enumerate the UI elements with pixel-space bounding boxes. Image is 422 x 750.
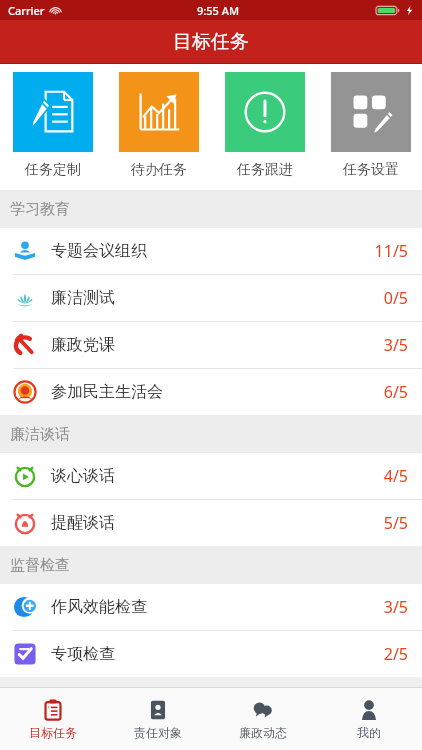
button[interactable]: 廉政动态 <box>210 688 316 750</box>
staticText: 目标任务 <box>29 725 77 740</box>
staticText: 责任对象 <box>134 725 182 740</box>
button[interactable]: 参加民主生活会 <box>0 369 422 415</box>
button[interactable]: 任务跟进 <box>225 72 305 179</box>
staticText: 2/5 <box>383 643 408 665</box>
button[interactable]: 我的 <box>316 688 422 750</box>
staticText: 学习教育 <box>10 200 70 219</box>
button[interactable]: 目标任务 <box>0 688 105 750</box>
button[interactable]: 专题会议组织 <box>0 228 422 275</box>
button[interactable]: 任务设置 <box>331 72 411 179</box>
staticText: 目标任务 <box>173 30 249 54</box>
staticText: 廉洁测试 <box>51 288 115 308</box>
staticText: 0/5 <box>383 287 408 309</box>
staticText: 任务定制 <box>25 161 81 179</box>
button[interactable]: 廉政党课 <box>0 322 422 369</box>
button[interactable]: 任务定制 <box>13 72 93 179</box>
staticText: 3/5 <box>383 334 408 356</box>
staticText: 我的 <box>357 725 381 740</box>
button[interactable]: 作风效能检查 <box>0 584 422 631</box>
staticText: 6/5 <box>383 381 408 403</box>
staticText: 专题会议组织 <box>51 241 147 261</box>
staticText: 5/5 <box>383 512 408 534</box>
staticText: 廉政党课 <box>51 335 115 355</box>
staticText: 任务跟进 <box>237 161 293 179</box>
staticText: 廉政动态 <box>239 725 287 740</box>
staticText: 9:55 AM <box>197 3 240 18</box>
staticText: 监督检查 <box>10 556 70 575</box>
button[interactable]: 廉洁测试 <box>0 275 422 322</box>
staticText: 3/5 <box>383 596 408 618</box>
button[interactable]: 谈心谈话 <box>0 453 422 500</box>
staticText: 参加民主生活会 <box>51 382 163 402</box>
staticText: 11/5 <box>374 240 408 262</box>
staticText: 待办任务 <box>131 161 187 179</box>
staticText: Carrier <box>8 3 45 18</box>
button[interactable]: 专项检查 <box>0 631 422 677</box>
staticText: 任务设置 <box>343 161 399 179</box>
button[interactable]: 待办任务 <box>119 72 199 179</box>
staticText: 4/5 <box>383 465 408 487</box>
staticText: 提醒谈话 <box>51 513 115 533</box>
staticText: 作风效能检查 <box>51 597 147 617</box>
staticText: 谈心谈话 <box>51 466 115 486</box>
button[interactable]: 责任对象 <box>105 688 210 750</box>
staticText: 专项检查 <box>51 644 115 664</box>
staticText: 廉洁谈话 <box>10 425 70 444</box>
button[interactable]: 提醒谈话 <box>0 500 422 546</box>
